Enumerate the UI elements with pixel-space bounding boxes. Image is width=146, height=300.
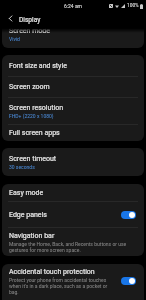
button[interactable]: Font size and style xyxy=(2,55,144,76)
button[interactable]: Toggle xyxy=(121,211,136,219)
staticText: Manage the Home, Back, and Recents butto… xyxy=(9,241,137,253)
staticText: Vivid xyxy=(9,36,20,42)
staticText: Easy mode xyxy=(9,189,44,197)
button[interactable]: Screen mode xyxy=(2,20,144,48)
staticText: 100% xyxy=(127,3,139,9)
button[interactable]: Edge panels xyxy=(2,202,144,227)
button[interactable]: Full screen apps xyxy=(2,125,144,141)
button[interactable]: Toggle xyxy=(121,277,136,285)
staticText: Screen mode xyxy=(9,27,50,35)
button[interactable]: Navigation bar xyxy=(2,228,144,256)
staticText: Display xyxy=(19,16,41,24)
button[interactable]: Screen resolution xyxy=(2,98,144,124)
staticText: FHD+ (2220 x 1080) xyxy=(9,113,54,119)
button[interactable]: Accidental touch protection xyxy=(2,264,144,298)
button[interactable]: Screen zoom xyxy=(2,77,144,97)
staticText: Full screen apps xyxy=(9,129,60,137)
button[interactable]: Back xyxy=(3,11,17,25)
staticText: Edge panels xyxy=(9,211,47,219)
staticText: Screen timeout xyxy=(9,155,57,163)
button[interactable]: Easy mode xyxy=(2,184,144,201)
staticText: 30 seconds xyxy=(9,164,35,170)
staticText: Protect your phone from accidental touch… xyxy=(9,277,118,295)
button[interactable]: Screen timeout xyxy=(2,148,144,176)
staticText: 6:24 am xyxy=(64,3,82,9)
staticText: Screen resolution xyxy=(9,104,64,112)
staticText: Screen zoom xyxy=(9,83,50,91)
staticText: Font size and style xyxy=(9,62,67,70)
staticText: Accidental touch protection xyxy=(9,268,95,276)
staticText: Navigation bar xyxy=(9,232,55,240)
